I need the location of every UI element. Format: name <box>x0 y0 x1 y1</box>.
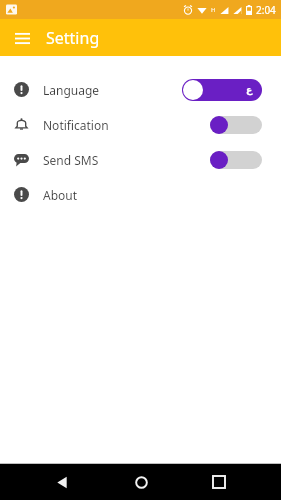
button[interactable]: Open navigation menu <box>9 25 35 51</box>
staticText: H <box>211 6 216 14</box>
staticText: 2:04 <box>256 3 276 17</box>
button[interactable]: Toggle <box>210 116 262 134</box>
button[interactable]: Language toggle <box>182 79 262 101</box>
staticText: Send SMS <box>43 152 99 168</box>
staticText: About <box>43 187 78 203</box>
staticText: Language <box>43 82 100 98</box>
button[interactable]: About <box>0 177 281 212</box>
button[interactable]: Recent apps <box>202 465 236 499</box>
button[interactable]: Back <box>45 465 79 499</box>
button[interactable]: Language <box>0 72 281 107</box>
button[interactable]: Toggle <box>210 151 262 169</box>
staticText: ع <box>246 85 253 95</box>
button[interactable]: Home <box>124 465 158 499</box>
button[interactable]: Send SMS <box>0 142 281 177</box>
staticText: Notification <box>43 117 109 133</box>
button[interactable]: Notification <box>0 107 281 142</box>
staticText: Setting <box>46 27 100 49</box>
